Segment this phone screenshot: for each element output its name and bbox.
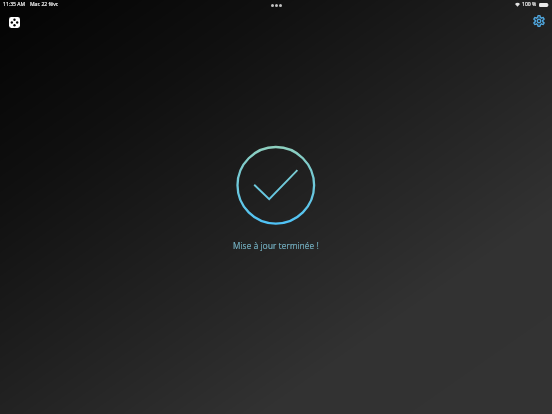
staticText: Mar. 22 févr. [30, 1, 59, 8]
staticText: Mise à jour terminée ! [233, 240, 319, 251]
button[interactable]: Settings [533, 15, 545, 27]
staticText: 11:35 AM [3, 1, 26, 8]
button[interactable]: Navigation pad [9, 17, 20, 28]
staticText: 100 % [522, 1, 537, 8]
